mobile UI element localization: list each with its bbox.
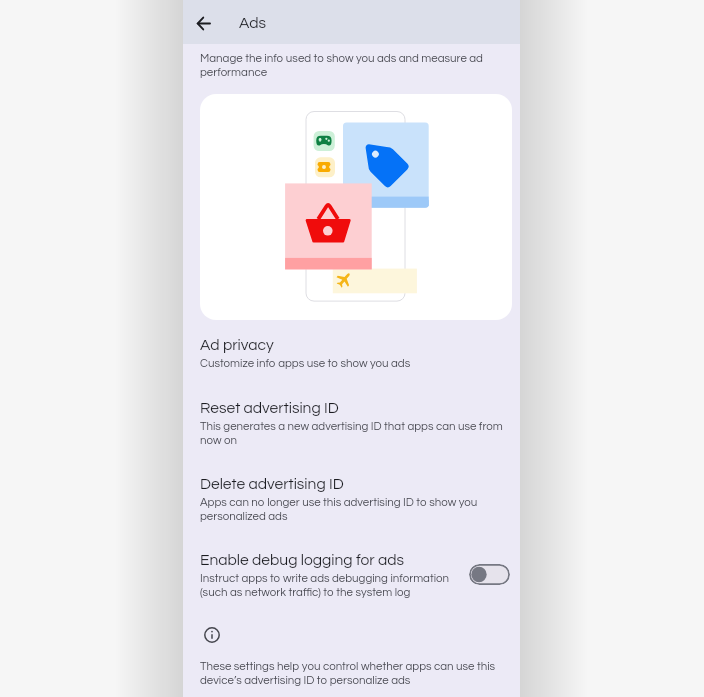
staticText: Ad privacy [200, 337, 274, 353]
button[interactable]: More information [198, 621, 226, 649]
staticText: Instruct apps to write ads debugging inf… [200, 573, 468, 598]
button[interactable]: Ad privacy [183, 337, 520, 370]
button[interactable]: Enable debug logging for ads [183, 552, 520, 598]
button[interactable]: Delete advertising ID [183, 476, 520, 522]
staticText: Ads [239, 15, 267, 31]
staticText: Customize info apps use to show you ads [200, 358, 504, 370]
staticText: Apps can no longer use this advertising … [200, 497, 504, 522]
button[interactable]: Reset advertising ID [183, 400, 520, 446]
staticText: Reset advertising ID [200, 400, 339, 416]
button[interactable]: Back [187, 7, 219, 39]
staticText: Enable debug logging for ads [200, 552, 405, 568]
staticText: Delete advertising ID [200, 476, 344, 492]
staticText: Manage the info used to show you ads and… [200, 53, 504, 78]
button[interactable]: Enable debug logging for ads [469, 564, 510, 585]
staticText: These settings help you control whether … [200, 661, 504, 686]
staticText: This generates a new advertising ID that… [200, 421, 504, 446]
